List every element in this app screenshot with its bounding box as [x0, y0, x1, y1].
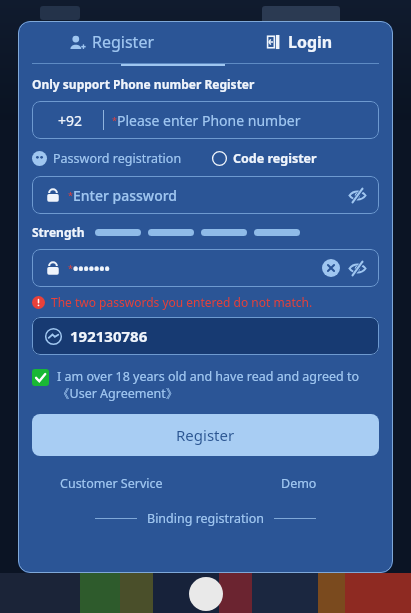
button[interactable]: * — [32, 249, 379, 287]
button[interactable]: I am over 18 years old and have read and… — [32, 368, 377, 402]
staticText: The two passwords you entered do not mat… — [51, 294, 313, 310]
staticText: Login — [288, 31, 333, 53]
staticText: I am over 18 years old and have read and… — [57, 368, 377, 402]
staticText: Enter password — [73, 186, 178, 205]
button[interactable]: Register — [32, 414, 379, 456]
button[interactable]: Code register — [212, 150, 317, 167]
staticText: Password registration — [53, 150, 182, 167]
button[interactable]: Customer Service — [56, 471, 167, 496]
staticText: Only support Phone number Register — [32, 76, 255, 92]
staticText: Register — [176, 425, 235, 445]
button[interactable]: Binding registration — [18, 510, 393, 527]
button[interactable]: +92 — [32, 101, 379, 139]
button[interactable]: Demo — [277, 471, 321, 496]
button[interactable]: Login — [205, 21, 393, 63]
button[interactable]: Show password — [348, 186, 379, 205]
staticText: * — [112, 114, 117, 126]
staticText: 192130786 — [70, 326, 148, 346]
button[interactable]: Register — [18, 21, 205, 63]
button[interactable]: 192130786 — [32, 317, 379, 355]
staticText: +92 — [58, 111, 83, 130]
staticText: Code register — [233, 150, 317, 167]
staticText: Please enter Phone number — [117, 111, 301, 130]
staticText: Strength — [32, 224, 85, 240]
button[interactable]: * — [32, 176, 379, 214]
staticText: Demo — [281, 475, 317, 492]
button[interactable]: Clear — [322, 259, 340, 277]
staticText: Binding registration — [147, 510, 264, 527]
button[interactable]: Show password — [348, 259, 379, 278]
staticText: * — [68, 189, 73, 201]
staticText: Register — [92, 31, 155, 53]
staticText: Customer Service — [60, 475, 163, 492]
staticText: * — [68, 262, 73, 274]
staticText: ••••••• — [73, 259, 110, 278]
button[interactable]: Password registration — [32, 150, 182, 167]
